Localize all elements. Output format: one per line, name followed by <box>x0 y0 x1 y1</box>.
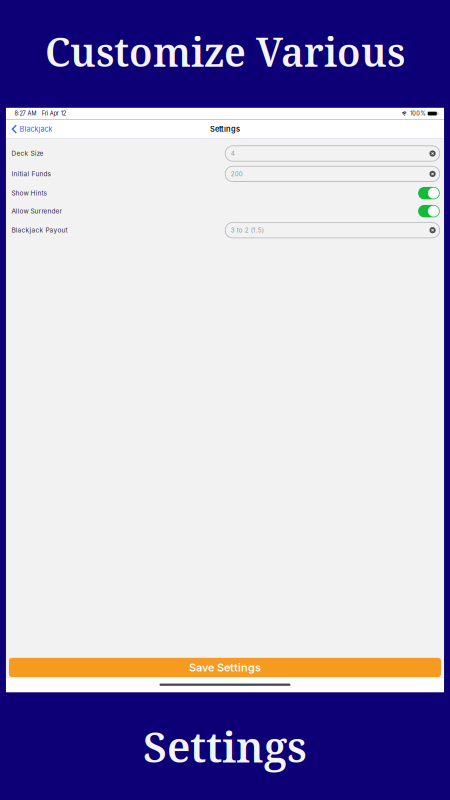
button[interactable]: Save Settings <box>9 658 441 677</box>
button[interactable]: Toggle setting <box>418 205 440 217</box>
staticText: 100% <box>410 110 425 117</box>
staticText: 3 to 2 (1.5) <box>231 226 264 234</box>
staticText: Initial Funds <box>11 170 50 178</box>
staticText: Settings <box>143 717 307 775</box>
staticText: Allow Surrender <box>11 207 61 215</box>
staticText: Deck Size <box>11 150 43 157</box>
button[interactable]: Deck Size <box>6 143 444 164</box>
staticText: 8:27 AM <box>14 110 36 117</box>
button[interactable]: Show Hints <box>6 184 444 202</box>
button[interactable]: Blackjack <box>6 119 58 139</box>
button[interactable]: Blackjack Payout <box>6 220 444 240</box>
button[interactable]: Toggle setting <box>418 187 440 199</box>
staticText: Save Settings <box>189 661 261 674</box>
staticText: Blackjack Payout <box>12 226 68 234</box>
button[interactable]: Initial Funds <box>6 164 444 184</box>
staticText: Blackjack <box>19 125 52 134</box>
staticText: Customize Various <box>45 25 405 78</box>
staticText: Fri Apr 12 <box>42 110 66 117</box>
staticText: 4 <box>231 150 235 157</box>
staticText: Show Hints <box>11 189 46 197</box>
staticText: 200 <box>231 170 243 178</box>
staticText: Settings <box>210 125 240 134</box>
button[interactable]: Allow Surrender <box>6 202 444 220</box>
